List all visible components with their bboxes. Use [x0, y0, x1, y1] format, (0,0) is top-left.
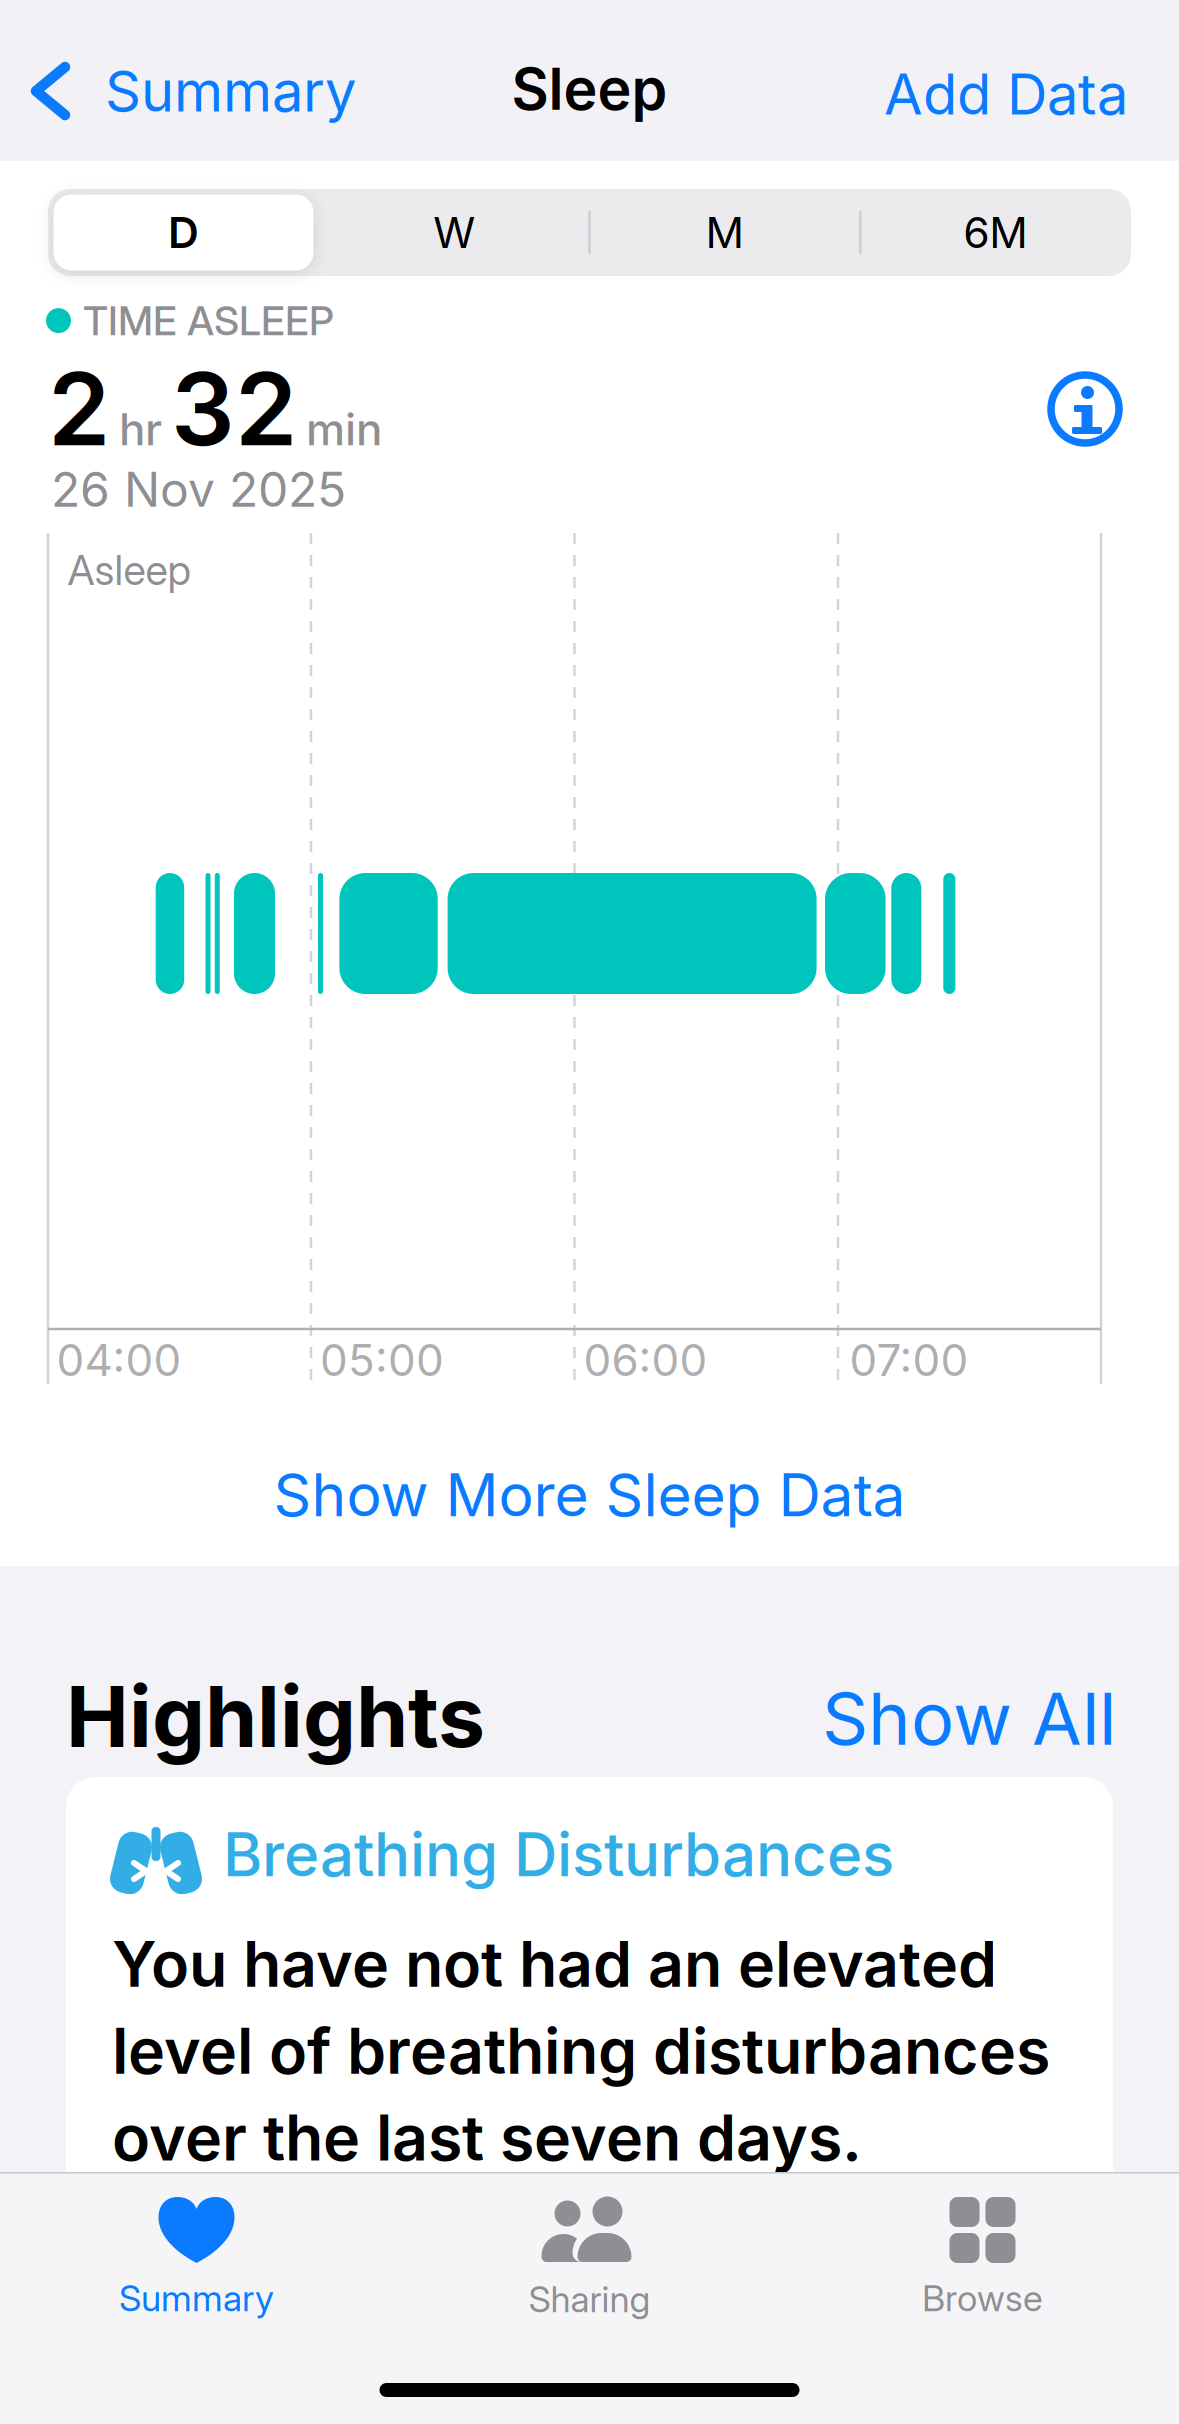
button[interactable]: Add Data — [884, 61, 1128, 127]
staticText: Summary — [119, 2277, 274, 2319]
staticText: 6M — [963, 207, 1028, 258]
button[interactable]: Breathing Disturbances — [66, 1777, 1113, 2424]
staticText: 05:00 — [320, 1334, 444, 1386]
button[interactable]: W — [319, 189, 590, 276]
staticText: You have not had an elevated level of br… — [112, 1927, 1050, 2175]
staticText: Summary — [105, 58, 356, 124]
staticText: Add Data — [884, 61, 1128, 127]
staticText: min — [306, 403, 382, 455]
staticText: M — [705, 207, 744, 258]
staticText: 06:00 — [583, 1334, 707, 1386]
staticText: Show All — [822, 1676, 1116, 1761]
staticText: 04:00 — [56, 1334, 181, 1386]
button[interactable]: M — [589, 189, 860, 276]
staticText: W — [433, 207, 475, 258]
button[interactable]: Browse — [786, 2197, 1179, 2319]
staticText: Highlights — [66, 1667, 485, 1766]
button[interactable]: Summary — [0, 58, 356, 124]
button[interactable]: Show More Sleep Data — [273, 1460, 905, 1530]
button[interactable]: D — [48, 189, 319, 276]
staticText: Sleep — [511, 55, 667, 123]
button[interactable]: Sharing — [393, 2196, 786, 2320]
staticText: Asleep — [67, 546, 190, 594]
staticText: 26 Nov 2025 — [51, 461, 346, 518]
staticText: 2 — [48, 350, 110, 468]
staticText: Show More Sleep Data — [273, 1460, 905, 1530]
button[interactable]: Summary — [0, 2197, 393, 2319]
staticText: D — [168, 207, 199, 258]
staticText: hr — [119, 403, 162, 455]
staticText: TIME ASLEEP — [83, 297, 334, 344]
staticText: Browse — [922, 2277, 1043, 2319]
staticText: Sharing — [528, 2278, 650, 2320]
staticText: 07:00 — [849, 1334, 968, 1386]
staticText: 32 — [171, 350, 297, 468]
staticText: Breathing Disturbances — [223, 1819, 894, 1890]
button[interactable]: About Time Asleep — [1047, 371, 1123, 447]
button[interactable]: Show All — [822, 1676, 1116, 1761]
button[interactable]: 6M — [860, 189, 1131, 276]
